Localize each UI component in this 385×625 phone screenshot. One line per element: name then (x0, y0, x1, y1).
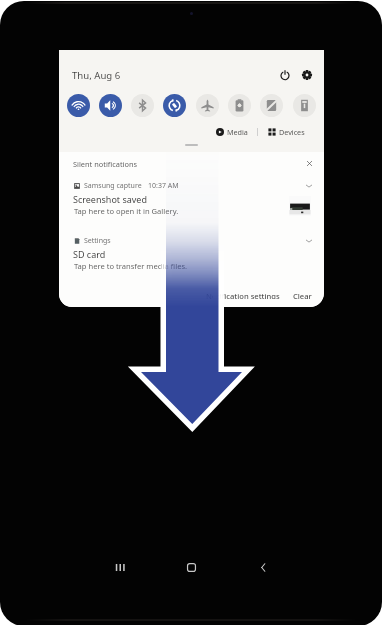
button[interactable]: Notification settings (202, 287, 284, 303)
staticText: SD card (73, 248, 106, 260)
button[interactable]: Media (214, 125, 250, 139)
staticText: Silent notifications (73, 159, 138, 169)
button[interactable]: Home (176, 552, 206, 582)
button[interactable]: Power (275, 65, 295, 85)
button[interactable]: Bluetooth (131, 94, 154, 117)
button[interactable]: Flashlight (293, 94, 316, 117)
staticText: Tap here to transfer media files. (74, 261, 188, 271)
button[interactable]: Settings (59, 231, 324, 286)
button[interactable]: Settings (297, 65, 317, 85)
button[interactable]: Airplane mode (196, 94, 219, 117)
staticText: Samsung capture (84, 181, 142, 191)
button[interactable]: Power saving (228, 94, 251, 117)
button[interactable]: Sound (99, 94, 122, 117)
staticText: Notification settings (206, 291, 280, 299)
button[interactable]: Expand (303, 180, 315, 192)
staticText: Settings (84, 236, 111, 246)
staticText: Devices (279, 127, 305, 137)
button[interactable]: Expand (303, 235, 315, 247)
button[interactable]: Recents (104, 552, 134, 582)
staticText: Thu, Aug 6 (72, 69, 121, 82)
button[interactable]: Dismiss silent notifications (301, 155, 317, 171)
button[interactable]: Devices (266, 125, 307, 139)
button[interactable]: Wi-Fi (67, 94, 90, 117)
button[interactable]: Clear (289, 287, 316, 303)
staticText: 10:37 AM (148, 181, 179, 191)
staticText: Tap here to open it in Gallery. (74, 206, 179, 216)
staticText: Media (227, 127, 248, 137)
button[interactable]: Auto rotate (163, 94, 186, 117)
button[interactable]: Back (248, 552, 278, 582)
button[interactable]: Mobile data (260, 94, 283, 117)
staticText: Screenshot saved (73, 193, 147, 205)
button[interactable]: Samsung capture (59, 176, 324, 231)
staticText: Clear (293, 291, 312, 299)
